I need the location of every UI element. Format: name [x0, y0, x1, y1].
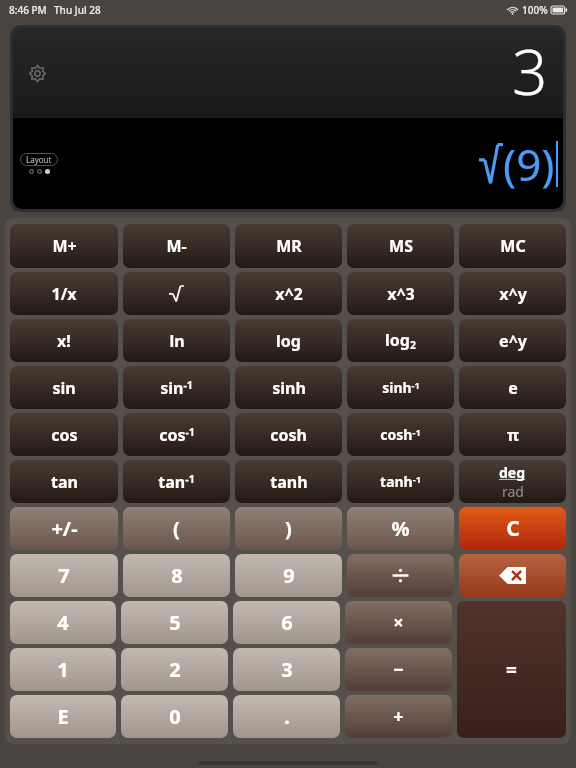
button[interactable]: Square root: [123, 272, 230, 315]
button[interactable]: 1: [10, 648, 116, 691]
staticText: tanh: [270, 471, 308, 493]
button[interactable]: M+: [10, 224, 118, 268]
button[interactable]: Degrees or radians: [459, 460, 566, 503]
button[interactable]: x^3: [347, 272, 454, 315]
staticText: =: [506, 657, 517, 683]
button[interactable]: 4: [10, 601, 116, 644]
button[interactable]: tanh: [235, 460, 342, 503]
staticText: 8:46 PM: [9, 3, 47, 17]
button[interactable]: Backspace: [459, 554, 566, 597]
button[interactable]: ): [235, 507, 342, 550]
button[interactable]: 3: [233, 648, 340, 691]
button[interactable]: x^y: [459, 272, 566, 315]
button[interactable]: e^y: [459, 319, 566, 362]
button[interactable]: 6: [233, 601, 340, 644]
button[interactable]: Settings: [22, 58, 52, 88]
staticText: Thu Jul 28: [54, 3, 101, 17]
staticText: rad: [502, 482, 524, 501]
staticText: Layout: [26, 154, 52, 165]
staticText: (9): [503, 134, 555, 194]
button[interactable]: π: [459, 413, 566, 456]
staticText: log: [276, 330, 301, 352]
staticText: ): [285, 515, 292, 542]
button[interactable]: (: [123, 507, 230, 550]
button[interactable]: ln: [123, 319, 230, 362]
button[interactable]: tan: [10, 460, 118, 503]
staticText: x^y: [499, 283, 527, 305]
button[interactable]: Divide: [347, 554, 454, 597]
staticText: +: [393, 704, 404, 729]
staticText: sin: [52, 377, 76, 399]
staticText: %: [391, 515, 410, 542]
button[interactable]: 0: [121, 695, 228, 738]
button[interactable]: M-: [123, 224, 230, 268]
button[interactable]: 5: [121, 601, 228, 644]
staticText: 0: [169, 703, 181, 730]
staticText: cos: [51, 424, 78, 446]
button[interactable]: x!: [10, 319, 118, 362]
button[interactable]: +/-: [10, 507, 118, 550]
staticText: 5: [169, 609, 181, 636]
button[interactable]: cosh: [235, 413, 342, 456]
staticText: e^y: [499, 330, 527, 352]
button[interactable]: +: [345, 695, 452, 738]
button[interactable]: cos-1: [123, 413, 230, 456]
button[interactable]: 2: [121, 648, 228, 691]
button[interactable]: %: [347, 507, 454, 550]
button[interactable]: E: [10, 695, 116, 738]
staticText: x!: [57, 330, 71, 352]
staticText: π: [507, 424, 519, 446]
button[interactable]: =: [457, 601, 566, 738]
button[interactable]: MC: [459, 224, 566, 268]
button[interactable]: −: [345, 648, 452, 691]
button[interactable]: MS: [347, 224, 454, 268]
staticText: MC: [500, 235, 526, 257]
button[interactable]: 1/x: [10, 272, 118, 315]
staticText: E: [57, 703, 69, 730]
button[interactable]: MR: [235, 224, 342, 268]
staticText: +/-: [51, 515, 78, 542]
button[interactable]: 9: [235, 554, 342, 597]
staticText: 100%: [522, 3, 548, 17]
staticText: tan: [51, 471, 78, 493]
button[interactable]: C: [459, 507, 566, 550]
staticText: 3: [281, 656, 293, 683]
staticText: 1: [57, 656, 69, 683]
button[interactable]: sin: [10, 366, 118, 409]
staticText: .: [284, 703, 290, 730]
button[interactable]: 7: [10, 554, 118, 597]
button[interactable]: tan-1: [123, 460, 230, 503]
staticText: tan-1: [158, 471, 195, 493]
button[interactable]: e: [459, 366, 566, 409]
staticText: 8: [171, 562, 183, 589]
staticText: sin-1: [160, 377, 193, 399]
staticText: 9: [283, 562, 295, 589]
staticText: sinh-1: [382, 378, 420, 397]
button[interactable]: log2: [347, 319, 454, 362]
button[interactable]: log: [235, 319, 342, 362]
button[interactable]: tanh-1: [347, 460, 454, 503]
staticText: cosh-1: [380, 425, 421, 444]
staticText: MS: [389, 235, 413, 257]
button[interactable]: x^2: [235, 272, 342, 315]
button[interactable]: cosh-1: [347, 413, 454, 456]
button[interactable]: sinh-1: [347, 366, 454, 409]
staticText: ln: [169, 330, 185, 352]
staticText: x^2: [275, 283, 303, 305]
staticText: 4: [57, 609, 69, 636]
button[interactable]: sinh: [235, 366, 342, 409]
staticText: 6: [281, 609, 293, 636]
staticText: 7: [58, 562, 70, 589]
staticText: −: [393, 657, 404, 682]
button[interactable]: sin-1: [123, 366, 230, 409]
button[interactable]: cos: [10, 413, 118, 456]
staticText: e: [508, 377, 518, 399]
button[interactable]: ×: [345, 601, 452, 644]
button[interactable]: .: [233, 695, 340, 738]
staticText: cos-1: [159, 424, 195, 446]
button[interactable]: Layout: [20, 153, 58, 166]
button[interactable]: 8: [123, 554, 230, 597]
staticText: tanh-1: [380, 472, 421, 491]
staticText: log2: [385, 329, 416, 352]
staticText: cosh: [270, 424, 307, 446]
